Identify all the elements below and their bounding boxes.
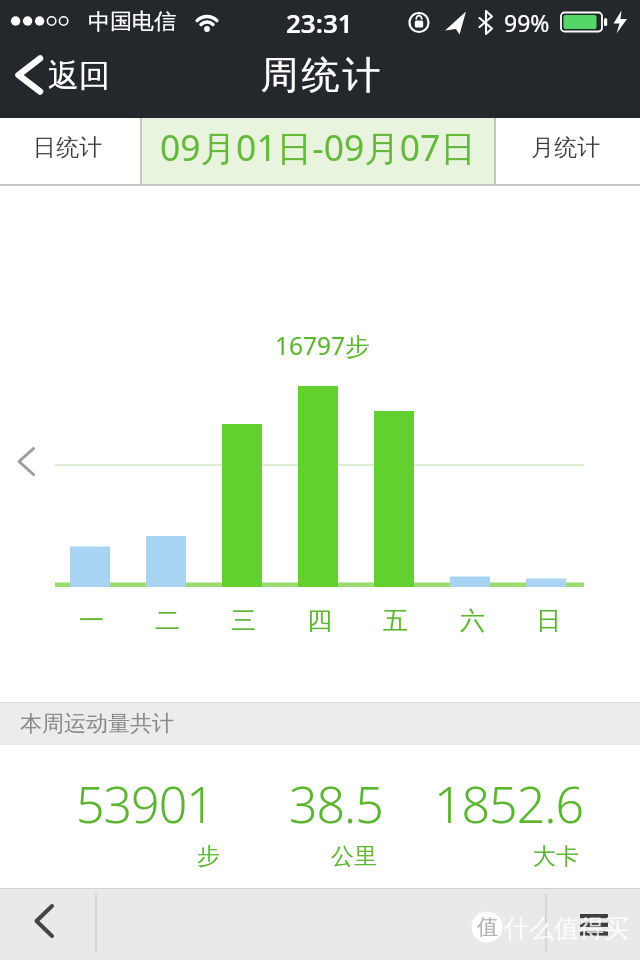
staticText: 返回 (48, 56, 110, 95)
staticText: 一 (79, 605, 104, 636)
staticText: 1852.6 (434, 770, 583, 838)
staticText: 大卡 (533, 842, 579, 871)
button[interactable] (496, 118, 640, 184)
staticText: 公里 (331, 842, 377, 871)
staticText: 值 (477, 914, 498, 940)
staticText: 日统计 (33, 133, 102, 162)
staticText: 本周运动量共计 (20, 710, 174, 738)
button[interactable] (546, 889, 640, 960)
button[interactable] (142, 118, 494, 184)
staticText: 09月01日-09月07日 (160, 123, 476, 171)
staticText: 三 (231, 605, 256, 636)
staticText: 什么值得买 (504, 913, 629, 944)
staticText: 月统计 (531, 133, 600, 162)
staticText: 日 (536, 605, 561, 636)
staticText: 99% (504, 7, 550, 38)
staticText: 38.5 (289, 770, 383, 838)
staticText: 53901 (76, 770, 214, 838)
staticText: 周统计 (259, 51, 382, 99)
staticText: 六 (460, 605, 485, 636)
staticText: 16797步 (275, 329, 370, 362)
button[interactable] (10, 50, 130, 100)
staticText: 中国电信 (88, 8, 176, 36)
staticText: 四 (307, 605, 332, 636)
button[interactable] (8, 438, 48, 484)
staticText: 步 (197, 842, 220, 871)
staticText: 五 (383, 605, 408, 636)
staticText: 二 (155, 605, 180, 636)
staticText: 23:31 (286, 5, 353, 40)
button[interactable] (0, 889, 95, 960)
button[interactable] (0, 118, 140, 184)
